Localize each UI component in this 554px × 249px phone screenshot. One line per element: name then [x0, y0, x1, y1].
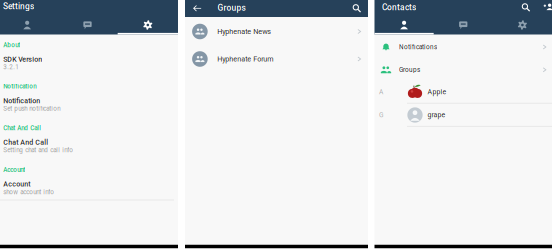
staticText: Account [3, 180, 30, 188]
staticText: Groups [217, 3, 245, 13]
button[interactable]: Contacts [0, 15, 57, 34]
button[interactable]: Search [518, 0, 534, 15]
button[interactable]: Chats [57, 15, 118, 34]
staticText: Settings [3, 2, 34, 11]
staticText: Contacts [382, 2, 416, 12]
button[interactable]: Chat And Call [0, 137, 174, 157]
button[interactable]: Notifications [374, 36, 552, 58]
staticText: grape [427, 111, 445, 119]
staticText: Groups [399, 66, 420, 74]
button[interactable]: Settings [3, 0, 63, 14]
staticText: Set push notification [3, 105, 60, 112]
staticText: Account [3, 166, 25, 173]
button[interactable]: Add contact [540, 0, 554, 15]
button[interactable]: Account [0, 179, 174, 199]
button[interactable]: Back [189, 0, 205, 17]
staticText: Hyphenate News [217, 27, 271, 36]
staticText: About [3, 41, 20, 49]
button[interactable]: Contacts [374, 15, 434, 34]
staticText: 3.2.1 [3, 63, 19, 71]
button[interactable]: Chats [434, 15, 493, 34]
staticText: show account info [3, 188, 54, 196]
staticText: Chat And Call [3, 124, 41, 132]
button[interactable]: Hyphenate Forum [185, 45, 368, 72]
staticText: Setting chat and call info [3, 146, 73, 154]
button[interactable]: SDK Version [0, 54, 174, 74]
button[interactable]: G [374, 104, 552, 127]
staticText: Chat And Call [3, 138, 48, 147]
staticText: Apple [427, 88, 446, 96]
staticText: SDK Version [3, 55, 42, 64]
staticText: A [379, 88, 383, 96]
button[interactable]: A [374, 81, 552, 104]
button[interactable]: Settings [118, 15, 178, 34]
button[interactable]: Search [349, 0, 365, 17]
staticText: Notifications [399, 43, 437, 51]
staticText: G [379, 111, 384, 119]
button[interactable]: Groups [374, 59, 552, 81]
button[interactable]: Hyphenate News [185, 18, 368, 45]
staticText: Hyphenate Forum [217, 55, 273, 63]
staticText: Notification [3, 97, 40, 105]
staticText: Notification [3, 83, 36, 90]
button[interactable]: Notification [0, 95, 174, 115]
button[interactable]: Settings [493, 15, 552, 34]
